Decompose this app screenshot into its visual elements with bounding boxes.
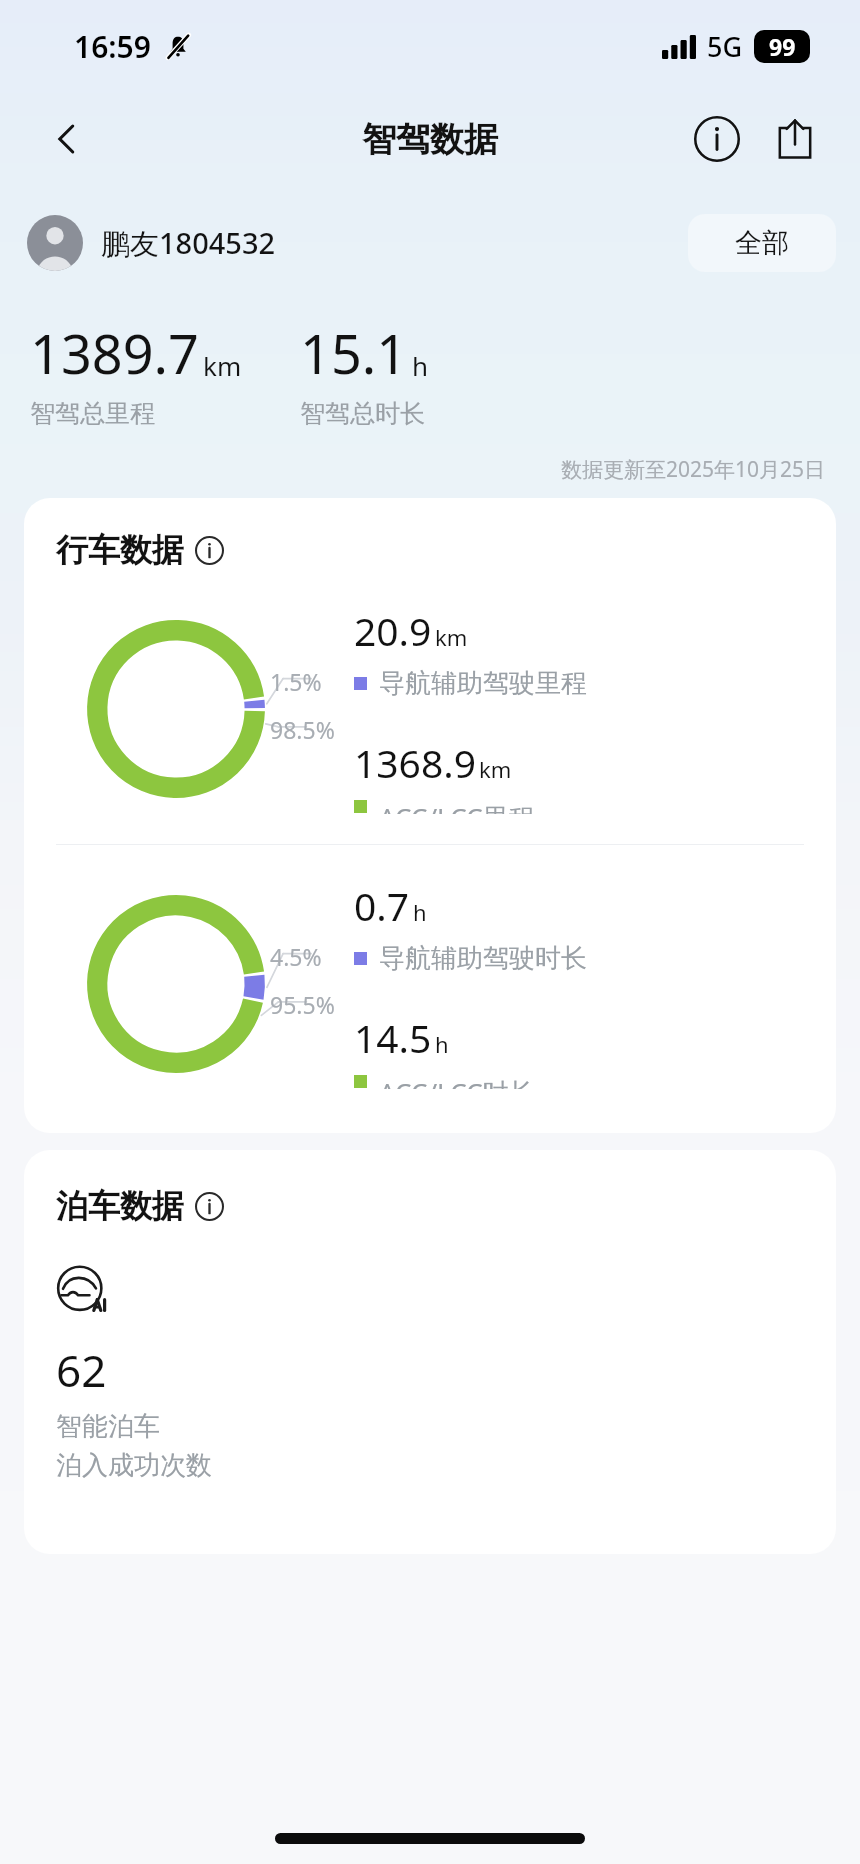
button[interactable]: 行车数据 <box>56 530 224 570</box>
button[interactable]: 全部 <box>688 214 836 272</box>
staticText: km <box>203 348 242 383</box>
staticText: 智能泊车 <box>56 1410 160 1443</box>
staticText: 15.1 <box>300 316 408 390</box>
staticText: 行车数据 <box>56 530 184 570</box>
staticText: 智驾数据 <box>362 118 498 161</box>
staticText: 20.9 <box>354 604 432 657</box>
staticText: 导航辅助驾驶时长 <box>379 942 587 975</box>
staticText: 数据更新至2025年10月25日 <box>561 455 826 484</box>
staticText: h <box>435 1029 449 1059</box>
button[interactable]: Info <box>684 106 750 172</box>
staticText: 智驾总时长 <box>300 398 425 429</box>
staticText: 导航辅助驾驶里程 <box>379 667 587 700</box>
staticText: km <box>479 754 512 784</box>
staticText: km <box>435 622 468 652</box>
button[interactable]: 泊车数据 <box>56 1186 224 1226</box>
button[interactable]: Share <box>762 106 828 172</box>
staticText: 5G <box>707 28 743 65</box>
staticText: 99 <box>769 31 796 62</box>
staticText: ACC/LCC里程 <box>379 799 535 814</box>
button[interactable]: 鹏友1804532 <box>27 215 276 271</box>
staticText: 4.5% <box>270 941 322 972</box>
staticText: 98.5% <box>270 714 335 745</box>
staticText: 智驾总里程 <box>30 398 155 429</box>
staticText: 泊入成功次数 <box>56 1449 212 1482</box>
staticText: 0.7 <box>354 879 410 932</box>
staticText: 16:59 <box>74 26 151 67</box>
staticText: h <box>412 348 429 383</box>
staticText: ACC/LCC时长 <box>379 1074 535 1089</box>
staticText: 鹏友1804532 <box>101 223 276 263</box>
staticText: 全部 <box>735 226 789 260</box>
staticText: 泊车数据 <box>56 1186 184 1226</box>
staticText: 1368.9 <box>354 736 476 789</box>
button[interactable]: Back <box>34 106 100 172</box>
staticText: 62 <box>56 1340 107 1400</box>
staticText: 95.5% <box>270 989 335 1020</box>
staticText: 14.5 <box>354 1011 432 1064</box>
staticText: 1.5% <box>270 666 322 697</box>
staticText: h <box>413 897 427 927</box>
staticText: 1389.7 <box>30 316 199 390</box>
